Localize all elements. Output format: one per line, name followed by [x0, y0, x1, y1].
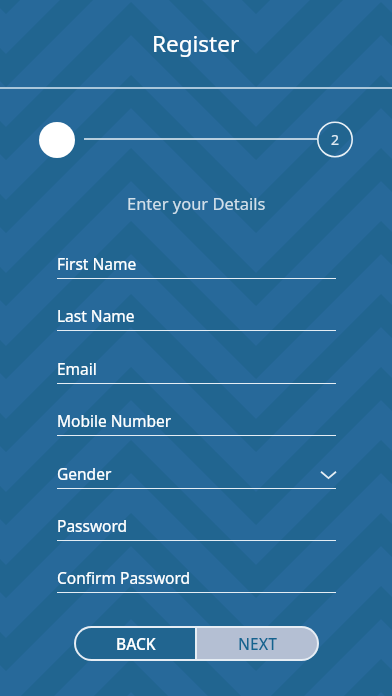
staticText: First Name	[57, 253, 137, 274]
button[interactable]: Gender	[57, 458, 336, 498]
staticText: Email	[57, 358, 97, 379]
button[interactable]: Password	[57, 510, 336, 550]
button[interactable]: NEXT	[197, 628, 317, 659]
button[interactable]: First Name	[57, 248, 336, 288]
staticText: Password	[57, 515, 128, 536]
button[interactable]: Confirm Password	[57, 562, 336, 602]
button[interactable]: Last Name	[57, 300, 336, 340]
staticText: NEXT	[238, 633, 277, 654]
staticText: Confirm Password	[57, 567, 191, 588]
staticText: BACK	[116, 633, 156, 654]
staticText: Last Name	[57, 305, 135, 326]
button[interactable]: BACK	[76, 628, 195, 659]
button[interactable]: Mobile Number	[57, 405, 336, 445]
staticText: Enter your Details	[127, 192, 266, 214]
staticText: Gender	[57, 463, 112, 484]
staticText: Register	[152, 28, 240, 59]
staticText: Mobile Number	[57, 410, 172, 431]
button[interactable]: Email	[57, 353, 336, 393]
staticText: 2	[331, 130, 340, 149]
